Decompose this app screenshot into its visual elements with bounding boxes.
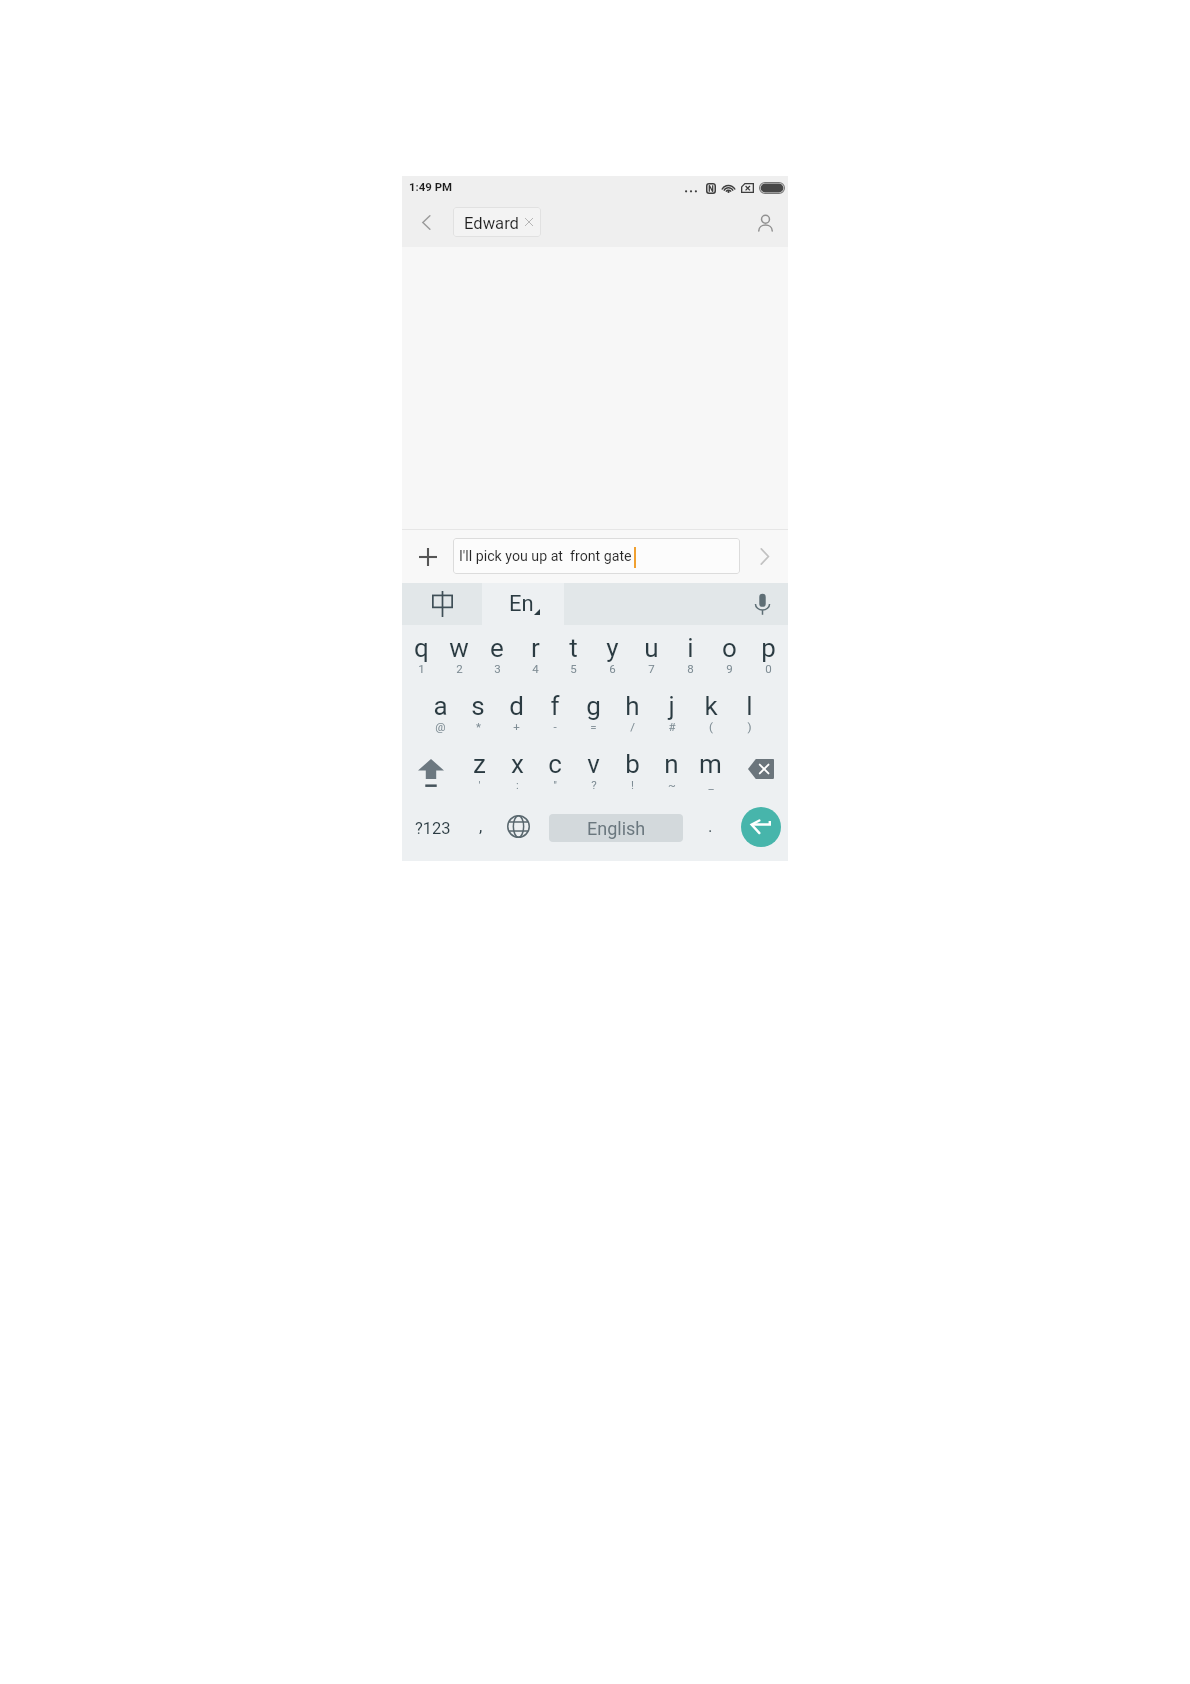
- button[interactable]: ,: [464, 799, 500, 861]
- staticText: 8: [687, 662, 694, 675]
- staticText: =: [590, 720, 597, 733]
- button[interactable]: q: [402, 625, 440, 683]
- staticText: m: [699, 749, 722, 779]
- button[interactable]: h: [613, 683, 652, 741]
- staticText: f: [550, 691, 560, 721]
- staticText: En: [509, 591, 534, 617]
- button[interactable]: v: [574, 741, 613, 799]
- staticText: I'll pick you up at front gate: [459, 548, 632, 565]
- staticText: *: [476, 720, 481, 733]
- button[interactable]: x: [498, 741, 536, 799]
- button[interactable]: o: [710, 625, 749, 683]
- staticText: o: [722, 633, 737, 663]
- staticText: u: [644, 633, 659, 663]
- button[interactable]: f: [535, 683, 574, 741]
- button[interactable]: En: [482, 583, 564, 625]
- staticText: t: [569, 633, 578, 663]
- staticText: x: [511, 749, 524, 779]
- staticText: 3: [494, 662, 501, 675]
- button[interactable]: .: [692, 799, 728, 861]
- button[interactable]: Shift: [402, 741, 460, 799]
- button[interactable]: m: [691, 741, 730, 799]
- staticText: k: [704, 691, 718, 721]
- button[interactable]: k: [691, 683, 730, 741]
- staticText: h: [625, 691, 640, 721]
- button[interactable]: English: [549, 814, 683, 842]
- staticText: w: [449, 633, 469, 663]
- staticText: a: [433, 691, 448, 721]
- staticText: 2: [456, 662, 463, 675]
- button[interactable]: Backspace: [730, 741, 788, 799]
- staticText: ~: [668, 778, 676, 791]
- staticText: !: [631, 778, 634, 791]
- staticText: :: [516, 778, 519, 791]
- staticText: n: [664, 749, 679, 779]
- button[interactable]: j: [652, 683, 691, 741]
- staticText: 4: [532, 662, 539, 675]
- staticText: ?123: [415, 819, 451, 838]
- button[interactable]: s: [459, 683, 497, 741]
- staticText: ': [478, 778, 481, 791]
- button[interactable]: b: [613, 741, 652, 799]
- staticText: 7: [648, 662, 655, 675]
- button[interactable]: Switch language: [500, 799, 538, 861]
- button[interactable]: c: [536, 741, 574, 799]
- button[interactable]: l: [730, 683, 769, 741]
- staticText: 0: [765, 662, 772, 675]
- staticText: +: [513, 720, 520, 733]
- button[interactable]: u: [632, 625, 671, 683]
- staticText: c: [548, 749, 562, 779]
- staticText: ,: [479, 816, 483, 836]
- staticText: d: [509, 691, 524, 721]
- staticText: ": [553, 778, 557, 791]
- button[interactable]: Back: [402, 200, 450, 247]
- button[interactable]: d: [497, 683, 535, 741]
- button[interactable]: Edward: [453, 207, 541, 237]
- staticText: e: [490, 633, 504, 663]
- button[interactable]: n: [652, 741, 691, 799]
- button[interactable]: I'll pick you up at front gate: [453, 538, 740, 574]
- staticText: g: [586, 691, 601, 721]
- staticText: _: [708, 778, 714, 791]
- staticText: Edward: [464, 214, 519, 233]
- button[interactable]: t: [554, 625, 593, 683]
- button[interactable]: w: [440, 625, 478, 683]
- staticText: p: [761, 633, 776, 663]
- staticText: ): [747, 720, 752, 733]
- button[interactable]: p: [749, 625, 788, 683]
- button[interactable]: g: [574, 683, 613, 741]
- button[interactable]: Send: [740, 530, 788, 583]
- button[interactable]: Add attachment: [402, 530, 453, 583]
- staticText: 6: [609, 662, 616, 675]
- button[interactable]: y: [593, 625, 632, 683]
- staticText: (: [709, 720, 713, 733]
- staticText: 5: [570, 662, 577, 675]
- button[interactable]: a: [421, 683, 459, 741]
- staticText: r: [531, 633, 540, 663]
- button[interactable]: Voice input: [736, 583, 788, 625]
- staticText: #: [668, 720, 676, 733]
- staticText: q: [414, 633, 429, 663]
- staticText: l: [746, 691, 753, 721]
- button[interactable]: Chinese input: [402, 583, 482, 625]
- button[interactable]: Contact profile: [742, 200, 788, 247]
- staticText: i: [687, 633, 694, 663]
- staticText: b: [625, 749, 640, 779]
- button[interactable]: ?123: [402, 799, 464, 861]
- staticText: 1:49 PM: [409, 180, 452, 193]
- staticText: y: [606, 633, 619, 663]
- staticText: .: [708, 816, 713, 836]
- staticText: z: [473, 749, 486, 779]
- staticText: ?: [591, 778, 597, 791]
- staticText: @: [435, 720, 446, 733]
- button[interactable]: z: [460, 741, 498, 799]
- staticText: /: [630, 720, 635, 733]
- button[interactable]: r: [516, 625, 554, 683]
- staticText: 1: [418, 662, 425, 675]
- button[interactable]: Enter: [741, 807, 781, 847]
- button[interactable]: e: [478, 625, 516, 683]
- button[interactable]: i: [671, 625, 710, 683]
- staticText: English: [587, 818, 646, 839]
- staticText: j: [668, 691, 675, 721]
- staticText: 9: [726, 662, 733, 675]
